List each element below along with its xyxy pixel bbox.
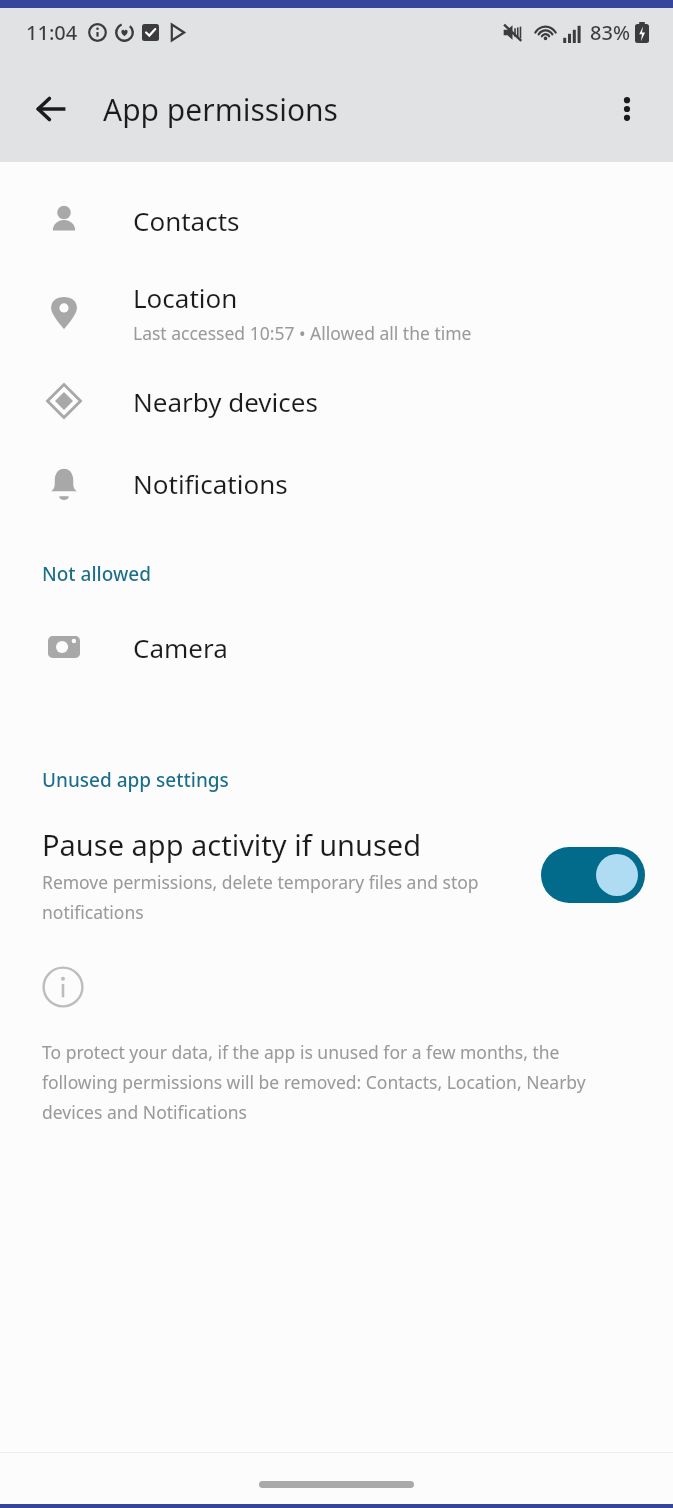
staticText: Notifications — [133, 466, 288, 501]
staticText: Nearby devices — [133, 384, 318, 419]
staticText: Contacts — [133, 203, 240, 238]
button[interactable]: Back — [22, 80, 80, 138]
staticText: Camera — [133, 630, 228, 665]
button[interactable]: Location — [0, 274, 673, 351]
staticText: 11:04 — [26, 19, 78, 46]
button[interactable]: Pause app activity if unused toggle — [541, 847, 645, 903]
staticText: Pause app activity if unused — [42, 825, 422, 864]
button[interactable]: Camera — [0, 619, 673, 675]
staticText: To protect your data, if the app is unus… — [42, 1040, 629, 1124]
button[interactable]: Nearby devices — [0, 373, 673, 429]
staticText: 83% — [590, 19, 630, 46]
button[interactable]: More options — [599, 81, 655, 137]
staticText: Last accessed 10:57 • Allowed all the ti… — [133, 321, 472, 345]
button[interactable]: Pause app activity if unused — [0, 825, 673, 924]
staticText: Remove permissions, delete temporary fil… — [42, 870, 501, 924]
button[interactable]: Contacts — [0, 192, 673, 248]
staticText: Unused app settings — [42, 767, 229, 793]
staticText: Not allowed — [42, 561, 151, 587]
button[interactable]: Notifications — [0, 455, 673, 511]
staticText: Location — [133, 280, 238, 315]
staticText: App permissions — [103, 89, 338, 130]
